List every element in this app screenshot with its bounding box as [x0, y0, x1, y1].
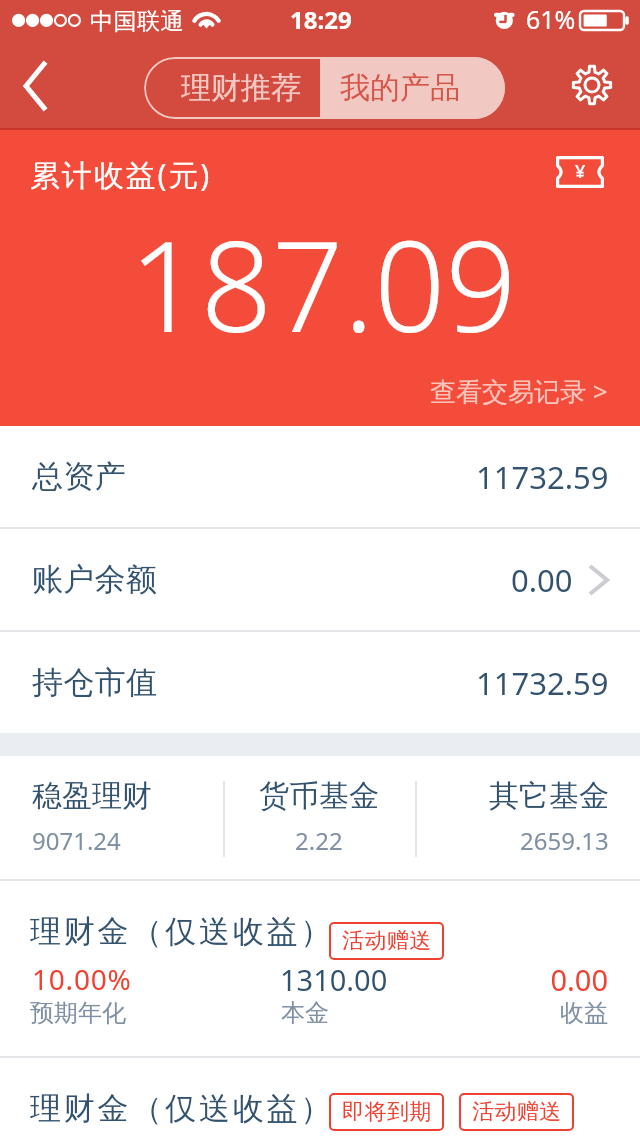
staticText: 理财金（仅送收益） [30, 912, 335, 951]
button[interactable]: 持仓市值 [0, 632, 640, 733]
staticText: 活动赠送 [472, 1098, 562, 1126]
button[interactable]: 稳盈理财 [0, 756, 223, 881]
button[interactable]: 我的产品 [320, 57, 505, 119]
button[interactable]: 理财推荐 [144, 57, 320, 119]
staticText: 0.00 [511, 559, 573, 601]
staticText: 本金 [281, 998, 329, 1028]
button[interactable]: Back [0, 40, 68, 130]
button[interactable]: 查看交易记录 > [430, 373, 608, 409]
button[interactable]: 理财金（仅送收益） [0, 881, 640, 1056]
staticText: 2659.13 [520, 824, 609, 857]
button[interactable]: 理财金（仅送收益） [0, 1058, 640, 1136]
button[interactable]: 其它基金 [415, 756, 640, 881]
staticText: 10.00% [32, 960, 132, 998]
staticText: 即将到期 [342, 1098, 432, 1126]
staticText: 累计收益(元) [30, 154, 212, 195]
staticText: 我的产品 [340, 69, 460, 107]
staticText: 61% [526, 2, 576, 36]
button[interactable]: Settings [560, 61, 624, 109]
staticText: 0.00 [0, 960, 608, 999]
staticText: 1310.00 [280, 960, 388, 999]
staticText: 理财推荐 [181, 69, 301, 107]
staticText: 收益 [0, 998, 608, 1028]
button[interactable]: 账户余额 [0, 529, 640, 630]
staticText: ¥ [575, 159, 586, 184]
staticText: 活动赠送 [342, 927, 432, 955]
button[interactable]: 货币基金 [223, 756, 415, 881]
staticText: 中国联通 [90, 7, 184, 36]
staticText: 2.22 [295, 824, 343, 857]
staticText: 预期年化 [30, 998, 126, 1028]
staticText: 18:29 [290, 3, 352, 36]
staticText: 查看交易记录 > [430, 373, 608, 409]
button[interactable]: 总资产 [0, 426, 640, 527]
staticText: 持仓市值 [32, 663, 158, 702]
staticText: 187.09 [3, 198, 640, 368]
staticText: 9071.24 [32, 824, 121, 857]
staticText: 11732.59 [476, 456, 609, 498]
staticText: 理财金（仅送收益） [30, 1089, 335, 1128]
staticText: 总资产 [32, 457, 127, 496]
staticText: 其它基金 [489, 777, 609, 815]
staticText: 货币基金 [259, 777, 379, 815]
staticText: 账户余额 [32, 560, 158, 599]
button[interactable]: Coupons [548, 148, 612, 196]
staticText: 11732.59 [476, 662, 609, 704]
staticText: 稳盈理财 [32, 777, 152, 815]
